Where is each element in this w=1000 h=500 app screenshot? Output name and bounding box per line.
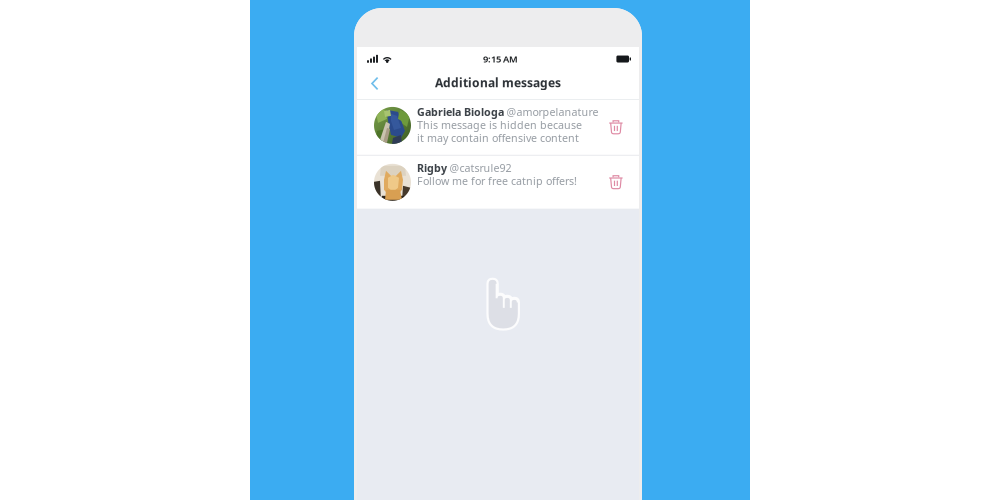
staticText: it may contain offensive content	[417, 131, 579, 145]
button[interactable]: Delete message	[604, 170, 628, 194]
staticText: This message is hidden because	[417, 118, 582, 132]
button[interactable]: Gabriela Biologa	[357, 100, 639, 155]
staticText: Gabriela Biologa	[417, 105, 504, 119]
staticText: 9:15 AM	[483, 53, 518, 65]
staticText: Rigby	[417, 161, 447, 175]
staticText: @catsrule92	[450, 161, 512, 175]
staticText: Follow me for free catnip offers!	[417, 174, 577, 188]
button[interactable]: Delete message	[604, 115, 628, 139]
button[interactable]: Rigby	[357, 156, 639, 209]
button[interactable]: Back	[365, 71, 385, 96]
staticText: @amorpelanature	[507, 105, 599, 119]
staticText: Additional messages	[435, 74, 561, 90]
